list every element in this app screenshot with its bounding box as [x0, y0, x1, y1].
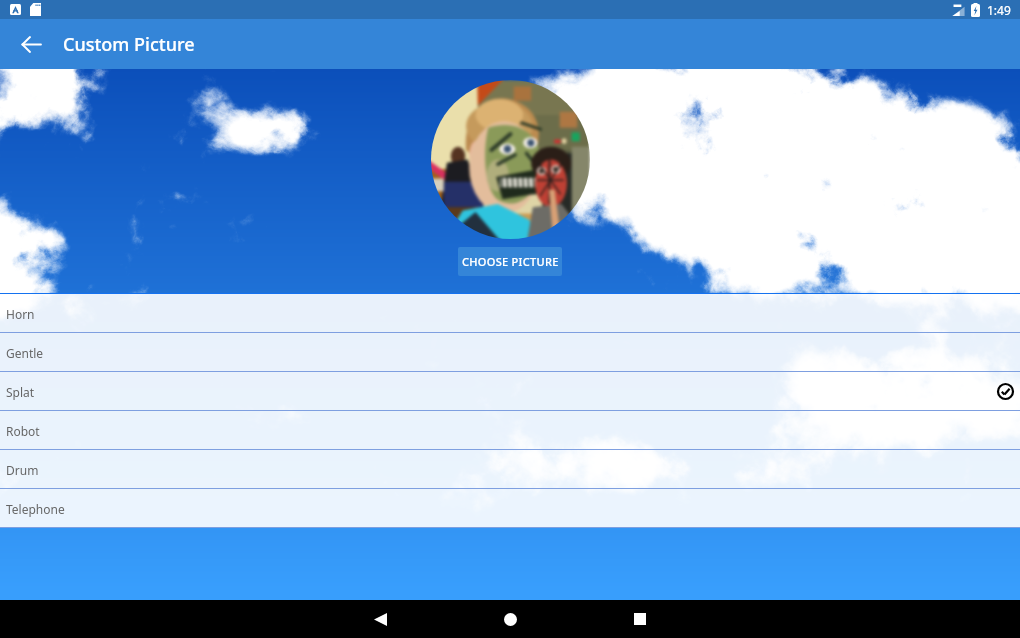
button[interactable]: Horn: [0, 294, 1020, 333]
button[interactable]: Splat: [0, 372, 1020, 411]
button[interactable]: Drum: [0, 450, 1020, 489]
staticText: CHOOSE PICTURE: [462, 254, 559, 269]
staticText: 1:49: [987, 2, 1011, 18]
button[interactable]: Back: [360, 600, 400, 638]
staticText: Horn: [6, 306, 35, 322]
staticText: Gentle: [6, 345, 44, 361]
staticText: Drum: [6, 462, 39, 478]
staticText: Custom Picture: [63, 32, 195, 57]
button[interactable]: Gentle: [0, 333, 1020, 372]
staticText: Splat: [6, 384, 35, 400]
button[interactable]: CHOOSE PICTURE: [458, 247, 562, 276]
staticText: Robot: [6, 423, 40, 439]
button[interactable]: Recents: [620, 600, 660, 638]
button[interactable]: Home: [490, 600, 530, 638]
button[interactable]: Telephone: [0, 489, 1020, 528]
button[interactable]: Robot: [0, 411, 1020, 450]
button[interactable]: Profile picture: [431, 80, 590, 239]
staticText: Telephone: [6, 501, 65, 517]
button[interactable]: Back: [7, 20, 55, 68]
